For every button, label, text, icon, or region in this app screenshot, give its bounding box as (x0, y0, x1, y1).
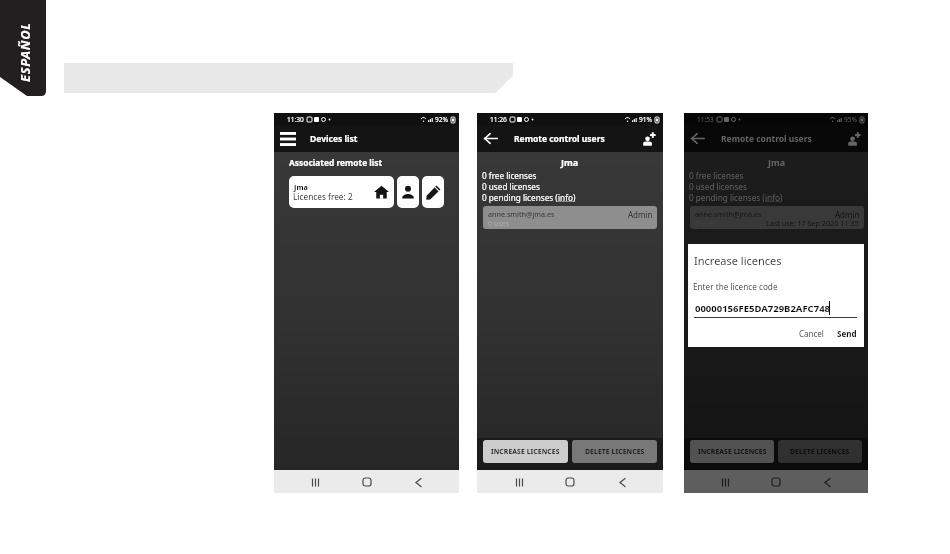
staticText: 0 pending licenses ( (689, 192, 765, 203)
staticText: 11:26 (490, 115, 507, 124)
staticText: 0 pending licenses ( (482, 192, 558, 203)
staticText: 0 uses (488, 218, 510, 228)
staticText: Admin (628, 209, 653, 220)
staticText: 91% (639, 115, 653, 124)
button[interactable]: Back (612, 472, 632, 492)
staticText: Devices list (310, 133, 358, 145)
staticText: ESPAÑOL (16, 22, 33, 82)
staticText: 0 free licenses (482, 170, 537, 181)
staticText: 11:30 (287, 115, 304, 124)
staticText: Cancel (799, 328, 824, 339)
button[interactable]: DELETE LICENCES (778, 440, 862, 463)
staticText: ) (780, 192, 783, 203)
button[interactable]: Add user (642, 131, 657, 146)
staticText: INCREASE LICENCES (491, 447, 560, 456)
staticText: 0 used licenses (482, 181, 540, 192)
staticText: Jma (768, 156, 786, 168)
button[interactable]: Recent apps (305, 472, 325, 492)
button[interactable]: INCREASE LICENCES (483, 440, 568, 463)
staticText: 0 free licenses (689, 170, 744, 181)
staticText: Associated remote list (289, 157, 383, 168)
button[interactable]: Edit device (422, 176, 444, 208)
button[interactable]: Navigate up (688, 129, 707, 148)
button[interactable]: Navigate up (481, 129, 500, 148)
staticText: Enter the licence code (693, 281, 778, 292)
staticText: anne.smith@jma.es (695, 209, 762, 219)
button[interactable]: Back (408, 472, 428, 492)
button[interactable]: Cancel (796, 326, 827, 341)
button[interactable]: anne.smith@jma.es (690, 206, 864, 229)
staticText: Licences free: 2 (293, 191, 353, 202)
button[interactable]: Remote control users (397, 176, 419, 208)
staticText: 92% (435, 115, 449, 124)
staticText: 0 used licenses (689, 181, 747, 192)
staticText: Send (837, 328, 857, 339)
button[interactable]: info (558, 192, 573, 203)
staticText: Increase licences (694, 253, 782, 268)
button[interactable]: DELETE LICENCES (572, 440, 657, 463)
button[interactable]: Add user (847, 131, 862, 146)
staticText: anne.smith@jma.es (488, 209, 555, 219)
button[interactable]: Back (817, 472, 837, 492)
staticText: Remote control users (721, 133, 812, 145)
staticText: Remote control users (514, 133, 605, 145)
button[interactable]: Recent apps (509, 472, 529, 492)
staticText: DELETE LICENCES (585, 447, 645, 456)
staticText: Jma (561, 156, 579, 168)
staticText: Jma (294, 182, 308, 192)
staticText: INCREASE LICENCES (698, 447, 767, 456)
staticText: DELETE LICENCES (790, 447, 850, 456)
staticText: Admin (835, 209, 860, 220)
button[interactable]: anne.smith@jma.es (483, 206, 657, 229)
staticText: Last use: 17 Sep 2020 11:35 (766, 218, 859, 228)
button[interactable]: info (765, 192, 780, 203)
button[interactable]: Home (560, 472, 580, 492)
button[interactable]: Home (357, 472, 377, 492)
button[interactable]: Recent apps (715, 472, 735, 492)
button[interactable]: Jma (289, 176, 394, 208)
button[interactable]: Send (834, 326, 860, 341)
staticText: 00000156FE5DA729B2AFC748 (695, 302, 831, 315)
button[interactable]: INCREASE LICENCES (690, 440, 774, 463)
button[interactable]: Open navigation menu (278, 129, 297, 148)
button[interactable]: Home (766, 472, 786, 492)
staticText: ) (573, 192, 576, 203)
staticText: 11:53 (697, 115, 714, 124)
staticText: 95% (844, 115, 858, 124)
